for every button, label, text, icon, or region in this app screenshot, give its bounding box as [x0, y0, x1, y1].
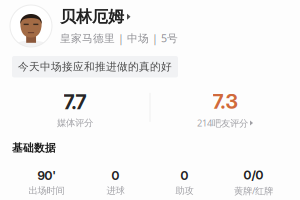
staticText: 助攻 — [175, 185, 193, 197]
staticText: 214吧友评分 — [197, 117, 248, 129]
staticText: 7.7 — [63, 90, 86, 114]
staticText: 90' — [37, 168, 55, 183]
staticText: 黄牌/红牌 — [234, 184, 273, 197]
staticText: 贝林厄姆 — [60, 7, 124, 27]
staticText: 0 — [180, 168, 188, 183]
staticText: 媒体评分 — [57, 117, 93, 129]
staticText: 0 — [111, 168, 119, 183]
button[interactable]: 贝林厄姆 — [0, 5, 300, 47]
button[interactable]: 7.7 — [0, 90, 150, 129]
staticText: 皇家马德里 | 中场 | 5号 — [60, 31, 178, 45]
staticText: 出场时间 — [28, 185, 64, 197]
staticText: 基础数据 — [12, 141, 56, 155]
staticText: 0/0 — [243, 168, 263, 182]
button[interactable]: 7.3 — [150, 89, 300, 129]
staticText: 7.3 — [212, 89, 237, 114]
staticText: 今天中场接应和推进做的真的好 — [18, 60, 172, 73]
staticText: 进球 — [106, 185, 124, 197]
